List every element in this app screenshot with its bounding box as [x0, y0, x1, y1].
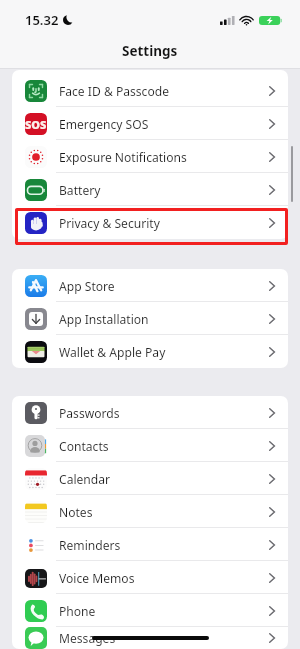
staticText: App Installation: [59, 311, 149, 327]
button[interactable]: Notes: [12, 495, 288, 528]
button[interactable]: Voice Memos: [12, 561, 288, 594]
staticText: App Store: [59, 278, 115, 294]
button[interactable]: Reminders: [12, 528, 288, 561]
button[interactable]: Battery: [12, 173, 288, 206]
staticText: 15.32: [25, 11, 59, 29]
button[interactable]: Messages: [12, 627, 288, 649]
staticText: Messages: [59, 630, 116, 646]
staticText: Reminders: [59, 537, 121, 553]
button[interactable]: App Store: [12, 269, 288, 302]
button[interactable]: Privacy & Security: [12, 206, 288, 239]
staticText: SOS: [25, 117, 47, 132]
staticText: Calendar: [59, 471, 111, 487]
staticText: Settings: [122, 42, 178, 60]
button[interactable]: Contacts: [12, 429, 288, 462]
button[interactable]: Passwords: [12, 396, 288, 429]
staticText: Emergency SOS: [59, 116, 149, 132]
staticText: Face ID & Passcode: [59, 83, 169, 99]
staticText: Notes: [59, 504, 93, 520]
button[interactable]: Wallet & Apple Pay: [12, 335, 288, 368]
staticText: Privacy & Security: [59, 215, 160, 231]
button[interactable]: Phone: [12, 594, 288, 627]
staticText: Contacts: [59, 438, 109, 454]
button[interactable]: Calendar: [12, 462, 288, 495]
staticText: Passwords: [59, 405, 120, 421]
staticText: Voice Memos: [59, 570, 135, 586]
button[interactable]: App Installation: [12, 302, 288, 335]
button[interactable]: Face ID & Passcode: [12, 74, 288, 107]
button[interactable]: SOS: [12, 107, 288, 140]
staticText: Exposure Notifications: [59, 149, 187, 165]
staticText: Wallet & Apple Pay: [59, 344, 166, 360]
button[interactable]: Exposure Notifications: [12, 140, 288, 173]
staticText: Battery: [59, 182, 101, 198]
staticText: Phone: [59, 603, 96, 619]
